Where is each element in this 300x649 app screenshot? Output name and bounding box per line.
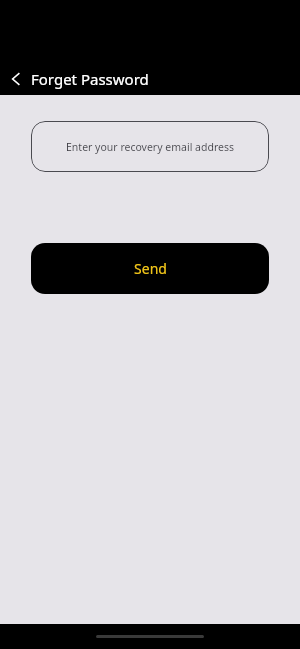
button[interactable]: Enter your recovery email address <box>31 121 269 172</box>
button[interactable]: Back <box>0 62 31 95</box>
staticText: Send <box>134 259 167 278</box>
staticText: Forget Password <box>31 69 149 89</box>
button[interactable]: Send <box>31 243 269 294</box>
staticText: Enter your recovery email address <box>66 140 234 154</box>
